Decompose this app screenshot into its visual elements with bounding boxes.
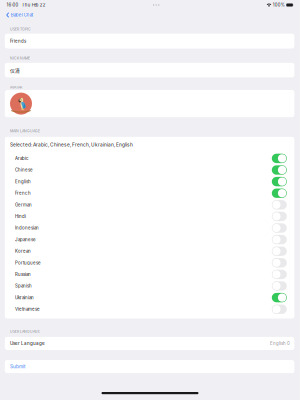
button[interactable]: German	[5, 199, 294, 211]
staticText: Friends	[10, 38, 26, 44]
button[interactable]: User Language	[5, 337, 294, 350]
staticText: 16:00	[6, 2, 18, 8]
staticText: Russian	[15, 272, 31, 277]
staticText: Hindi	[15, 214, 26, 219]
staticText: Arabic	[15, 156, 29, 161]
staticText: Portuguese	[15, 260, 41, 265]
staticText: Babel Chat	[11, 12, 33, 18]
staticText: USER TOPIC	[10, 27, 31, 31]
staticText: USER LANGUAGE	[10, 329, 40, 334]
staticText: 100%	[273, 2, 285, 8]
staticText: Ukrainian	[15, 295, 34, 300]
button[interactable]: Chinese	[5, 164, 294, 176]
button[interactable]: Babel Chat	[0, 10, 33, 20]
button[interactable]: Spanish	[5, 280, 294, 292]
staticText: German	[15, 202, 32, 207]
staticText: Japanese	[15, 237, 36, 242]
staticText: NICK NAME	[10, 56, 30, 60]
staticText: Submit	[10, 364, 26, 369]
button[interactable]: Vietnamese	[5, 303, 294, 315]
staticText: 仪清	[10, 67, 20, 74]
button[interactable]: Submit	[5, 360, 294, 373]
staticText: Korean	[15, 248, 31, 254]
button[interactable]: English	[5, 176, 294, 187]
staticText: Spanish	[15, 283, 32, 289]
button[interactable]: Korean	[5, 245, 294, 257]
button[interactable]: Indonesian	[5, 222, 294, 234]
staticText: Vietnamese	[15, 306, 40, 312]
staticText: Selected: Arabic, Chinese, French, Ukrai…	[10, 142, 133, 148]
button[interactable]: Portuguese	[5, 257, 294, 269]
button[interactable]: Arabic	[5, 153, 294, 164]
staticText: French	[15, 190, 31, 196]
button[interactable]: Russian	[5, 269, 294, 280]
button[interactable]: Hindi	[5, 211, 294, 222]
button[interactable]: Ukrainian	[5, 292, 294, 303]
staticText: English 0	[270, 341, 290, 346]
button[interactable]: French	[5, 187, 294, 199]
staticText: MAIN LANGUAGE	[10, 129, 40, 133]
staticText: User Language	[10, 341, 45, 346]
staticText: English	[15, 179, 31, 184]
staticText: Indonesian	[15, 225, 39, 231]
button[interactable]: Japanese	[5, 234, 294, 245]
staticText: AVATAR	[10, 85, 22, 89]
staticText: Chinese	[15, 167, 33, 173]
staticText: Thu Feb 22	[22, 2, 46, 8]
